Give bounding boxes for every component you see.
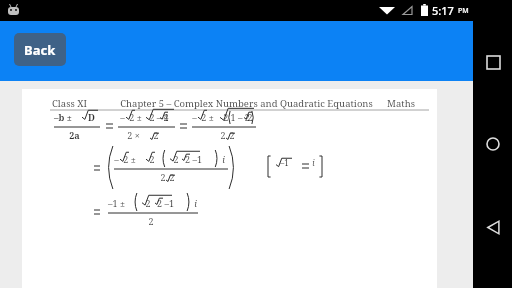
staticText: 2 – 4 bbox=[149, 111, 169, 123]
staticText: Maths bbox=[387, 97, 415, 110]
staticText: – bbox=[120, 111, 125, 123]
staticText: 2a bbox=[69, 129, 80, 141]
staticText: 2 –1 bbox=[157, 197, 174, 209]
staticText: i bbox=[222, 153, 225, 165]
staticText: 2 –1 bbox=[185, 153, 202, 165]
staticText: – bbox=[192, 111, 197, 123]
staticText: 2 bbox=[173, 153, 179, 165]
staticText: – bbox=[114, 153, 119, 165]
button[interactable]: Recent apps bbox=[479, 48, 507, 76]
staticText: 2 bbox=[163, 111, 169, 123]
staticText: PM bbox=[458, 6, 469, 16]
staticText: i bbox=[194, 197, 197, 209]
staticText: 2 bbox=[247, 111, 253, 123]
staticText: 2 × bbox=[127, 129, 140, 141]
staticText: 2 bbox=[160, 171, 166, 183]
staticText: 2 bbox=[153, 129, 159, 141]
button[interactable]: Back bbox=[479, 213, 507, 241]
staticText: 2 bbox=[149, 153, 155, 165]
staticText: Class XI bbox=[52, 97, 87, 110]
staticText: –1 ± bbox=[108, 197, 125, 209]
staticText: D bbox=[88, 111, 95, 123]
button[interactable]: Back bbox=[14, 33, 66, 66]
staticText: 2 bbox=[229, 129, 235, 141]
staticText: 2 bbox=[145, 197, 151, 209]
staticText: 5:17 bbox=[432, 3, 454, 18]
staticText: 2 1 – 2 bbox=[223, 111, 250, 123]
staticText: 2 ± bbox=[201, 111, 214, 123]
staticText: 2 bbox=[148, 215, 154, 227]
staticText: Chapter 5 – Complex Numbers and Quadrati… bbox=[120, 97, 373, 110]
staticText: 2 bbox=[169, 171, 175, 183]
staticText: Back bbox=[24, 41, 56, 59]
staticText: 2 ± bbox=[129, 111, 142, 123]
button[interactable]: Home bbox=[479, 130, 507, 158]
staticText: i bbox=[312, 157, 315, 168]
staticText: 2 bbox=[220, 129, 226, 141]
staticText: –1 bbox=[280, 157, 289, 168]
staticText: 2 ± bbox=[123, 153, 136, 165]
staticText: –b ± bbox=[54, 111, 72, 123]
